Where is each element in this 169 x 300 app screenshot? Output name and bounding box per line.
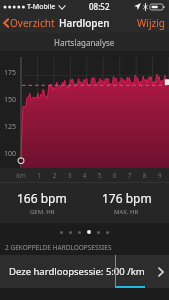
staticText: Hardlopen bbox=[59, 16, 110, 30]
staticText: 100 bbox=[4, 149, 17, 159]
staticText: 125 bbox=[4, 122, 17, 132]
button[interactable]: Overzicht bbox=[0, 14, 59, 32]
staticText: 150 bbox=[4, 95, 17, 105]
staticText: 8 bbox=[137, 171, 152, 180]
staticText: 9 bbox=[152, 171, 167, 180]
staticText: km bbox=[11, 171, 31, 180]
staticText: 2 bbox=[47, 171, 62, 180]
staticText: GEM. HR bbox=[30, 208, 55, 216]
staticText: Deze hardloopsessie: 5:00 /km bbox=[9, 265, 145, 278]
staticText: 175 bbox=[4, 68, 17, 78]
staticText: Overzicht bbox=[10, 16, 55, 30]
staticText: MAX. HR bbox=[114, 208, 139, 216]
staticText: 166 bpm bbox=[17, 190, 67, 206]
staticText: 6 bbox=[107, 171, 122, 180]
staticText: 08:52 bbox=[89, 1, 110, 12]
staticText: T-Mobile bbox=[27, 2, 56, 12]
staticText: 1 bbox=[31, 171, 47, 180]
staticText: 2 GEKOPPELDE HARDLOOPSESSIES bbox=[5, 243, 112, 252]
button[interactable]: Wijzig bbox=[133, 13, 169, 33]
other: Details bbox=[158, 267, 164, 277]
staticText: 7 bbox=[122, 171, 137, 180]
staticText: 3 bbox=[62, 171, 77, 180]
staticText: 4 bbox=[77, 171, 92, 180]
button[interactable]: Deze hardloopsessie: 5:00 /km bbox=[0, 255, 169, 288]
staticText: 5 bbox=[92, 171, 107, 180]
staticText: Hartslaganalyse bbox=[54, 37, 115, 48]
staticText: 176 bpm bbox=[102, 190, 152, 206]
